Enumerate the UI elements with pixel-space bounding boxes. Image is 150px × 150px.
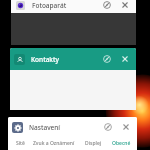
- button[interactable]: Close: [119, 120, 133, 134]
- button[interactable]: Fotoaparát: [11, 0, 136, 45]
- button[interactable]: Pin window: [101, 120, 115, 134]
- staticText: Zvuk a Oznámení: [33, 140, 75, 147]
- button[interactable]: Zvuk a Oznámení: [29, 137, 79, 150]
- button[interactable]: Sítě: [11, 137, 29, 150]
- staticText: Displej: [85, 140, 102, 147]
- button[interactable]: Close: [118, 0, 132, 12]
- staticText: Obecné: [112, 140, 131, 147]
- button[interactable]: Pin window: [100, 52, 114, 66]
- staticText: Nastavení: [29, 123, 101, 132]
- button[interactable]: Kontakty: [10, 48, 136, 110]
- staticText: Fotoaparát: [32, 1, 100, 10]
- button[interactable]: Nastavení: [8, 117, 137, 150]
- staticText: Sítě: [16, 140, 25, 147]
- button[interactable]: Pin window: [100, 0, 114, 12]
- staticText: Kontakty: [31, 55, 100, 64]
- button[interactable]: Displej: [79, 137, 107, 150]
- button[interactable]: Obecné: [107, 137, 135, 150]
- button[interactable]: Close: [118, 52, 132, 66]
